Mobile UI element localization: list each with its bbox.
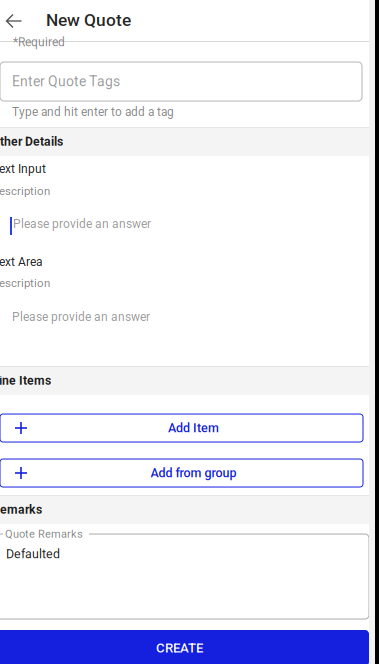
staticText: Defaulted <box>6 547 60 561</box>
staticText: Other Details <box>0 134 63 149</box>
staticText: Text Input <box>0 162 46 176</box>
staticText: Add Item <box>168 421 219 435</box>
button[interactable]: Add from group <box>0 459 363 487</box>
staticText: Please provide an answer <box>13 217 151 231</box>
staticText: Please provide an answer <box>12 310 150 324</box>
staticText: *Required <box>13 35 65 49</box>
staticText: Description <box>0 184 50 198</box>
staticText: Type and hit enter to add a tag <box>12 105 174 119</box>
staticText: CREATE <box>156 640 203 656</box>
staticText: Text Area <box>0 255 43 269</box>
staticText: Quote Remarks <box>5 528 83 540</box>
button[interactable]: Back <box>0 6 46 36</box>
button[interactable]: Add Item <box>0 414 363 442</box>
staticText: Description <box>0 276 50 290</box>
staticText: Remarks <box>0 502 42 517</box>
staticText: New Quote <box>46 10 131 30</box>
staticText: Enter Quote Tags <box>12 73 120 90</box>
staticText: Add from group <box>150 466 236 480</box>
staticText: Line Items <box>0 373 51 388</box>
button[interactable]: CREATE <box>0 630 369 664</box>
